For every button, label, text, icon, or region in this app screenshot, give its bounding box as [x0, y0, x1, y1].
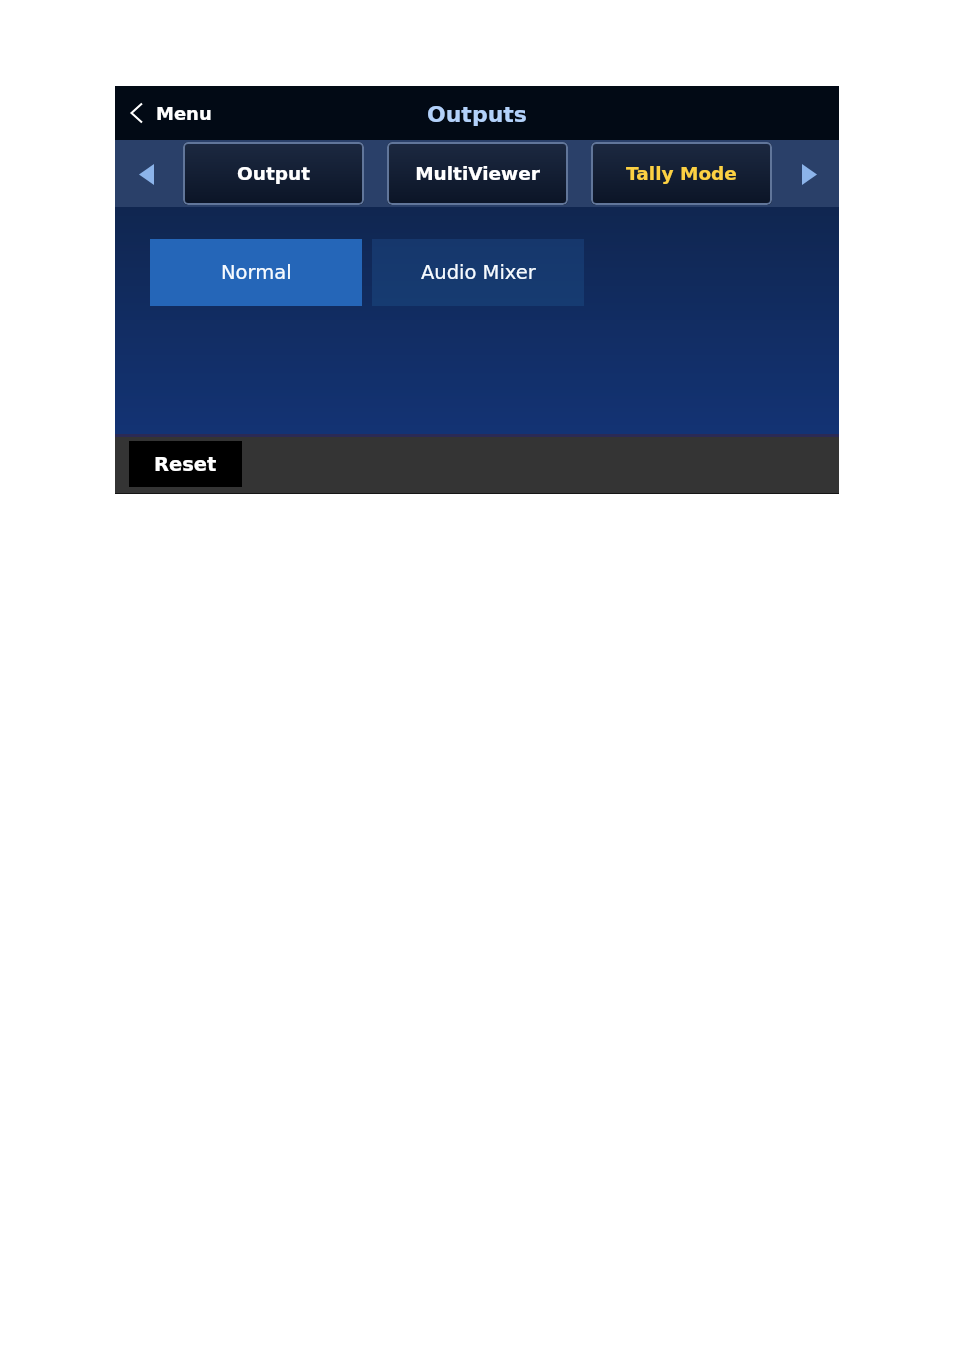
staticText: Output — [237, 163, 310, 185]
button[interactable]: Menu — [115, 96, 224, 130]
button[interactable]: Output — [183, 142, 364, 205]
button[interactable]: Previous page — [124, 152, 168, 196]
staticText: Outputs — [427, 102, 527, 128]
staticText: Normal — [221, 261, 292, 284]
staticText: Reset — [154, 453, 217, 476]
button[interactable]: MultiViewer — [387, 142, 568, 205]
staticText: Audio Mixer — [421, 261, 536, 284]
staticText: Tally Mode — [626, 163, 737, 185]
button[interactable]: Normal — [150, 239, 362, 306]
button[interactable]: Next page — [787, 152, 831, 196]
button[interactable]: Tally Mode — [591, 142, 772, 205]
staticText: Menu — [156, 103, 212, 124]
staticText: MultiViewer — [415, 163, 540, 185]
button[interactable]: Audio Mixer — [372, 239, 584, 306]
button[interactable]: Reset — [129, 441, 242, 487]
